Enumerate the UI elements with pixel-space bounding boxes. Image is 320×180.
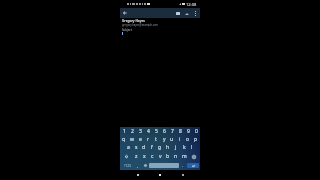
button[interactable]: . [179, 161, 186, 170]
button[interactable]: Enter [187, 163, 199, 168]
staticText: 1 [123, 128, 126, 135]
staticText: z [135, 153, 138, 160]
staticText: Gregory Hayes [122, 19, 145, 23]
staticText: g [158, 144, 162, 151]
staticText: x [143, 153, 146, 160]
button[interactable]: b [164, 152, 172, 161]
staticText: n [174, 153, 178, 160]
button[interactable]: u [168, 135, 176, 143]
button[interactable]: l [188, 143, 196, 152]
button[interactable]: Back [120, 8, 130, 18]
staticText: p [194, 136, 198, 143]
button[interactable]: w [128, 135, 136, 143]
staticText: 4 [147, 128, 150, 135]
button[interactable]: v [156, 152, 164, 161]
button[interactable]: o [184, 135, 192, 143]
button[interactable]: j [172, 143, 180, 152]
staticText: 2 [131, 128, 134, 135]
staticText: o [186, 136, 190, 143]
button[interactable]: 0 [192, 127, 200, 135]
button[interactable]: 1 [120, 127, 128, 135]
staticText: r [147, 136, 150, 143]
button[interactable]: t [152, 135, 160, 143]
button[interactable]: d [140, 143, 148, 152]
staticText: ?123 [124, 164, 131, 168]
button[interactable]: p [192, 135, 200, 143]
staticText: j [175, 144, 177, 151]
staticText: 8 [179, 128, 182, 135]
button[interactable]: Home [155, 170, 165, 180]
staticText: s [135, 144, 138, 151]
button[interactable]: Recents [178, 170, 188, 180]
staticText: 5 [155, 128, 158, 135]
button[interactable]: c [148, 152, 156, 161]
button[interactable]: More options [191, 8, 200, 18]
staticText: , [137, 163, 138, 168]
staticText: gregory.hayes@example.com [122, 23, 158, 27]
staticText: e [139, 136, 142, 143]
button[interactable]: , [134, 161, 141, 170]
button[interactable]: r [144, 135, 152, 143]
button[interactable]: m [180, 152, 188, 161]
button[interactable]: 9 [184, 127, 192, 135]
staticText: k [183, 144, 186, 151]
button[interactable]: q [120, 135, 128, 143]
staticText: 9 [187, 128, 190, 135]
staticText: d [142, 144, 146, 151]
staticText: 6 [163, 128, 166, 135]
staticText: a [127, 144, 130, 151]
staticText: t [155, 136, 157, 143]
button[interactable]: ?123 [120, 161, 134, 170]
button[interactable]: 6 [160, 127, 168, 135]
button[interactable]: Back [133, 170, 143, 180]
staticText: l [191, 144, 193, 151]
button[interactable]: Attach file [173, 8, 182, 18]
button[interactable]: 2 [128, 127, 136, 135]
staticText: u [170, 136, 174, 143]
button[interactable]: Send [182, 8, 191, 18]
staticText: 12:08 [186, 2, 197, 7]
button[interactable]: e [136, 135, 144, 143]
button[interactable]: k [180, 143, 188, 152]
staticText: m [182, 153, 187, 160]
staticText: . [182, 163, 183, 168]
staticText: h [166, 144, 170, 151]
staticText: w [130, 136, 134, 143]
button[interactable]: Shift [120, 152, 132, 161]
staticText: 3 [139, 128, 142, 135]
staticText: b [166, 153, 170, 160]
button[interactable]: h [164, 143, 172, 152]
button[interactable]: g [156, 143, 164, 152]
staticText: c [151, 153, 154, 160]
button[interactable]: 7 [168, 127, 176, 135]
button[interactable]: Space [149, 163, 179, 168]
staticText: Subject [122, 28, 132, 32]
button[interactable]: Backspace [188, 152, 200, 161]
staticText: q [122, 136, 126, 143]
button[interactable]: a [124, 143, 132, 152]
staticText: y [163, 136, 166, 143]
button[interactable]: f [148, 143, 156, 152]
staticText: v [159, 153, 162, 160]
button[interactable]: z [132, 152, 140, 161]
button[interactable]: s [132, 143, 140, 152]
staticText: 0 [195, 128, 198, 135]
button[interactable]: y [160, 135, 168, 143]
button[interactable]: Change keyboard [141, 161, 149, 170]
button[interactable]: x [140, 152, 148, 161]
staticText: i [179, 136, 181, 143]
button[interactable]: 3 [136, 127, 144, 135]
staticText: f [151, 144, 153, 151]
button[interactable]: n [172, 152, 180, 161]
staticText: 7 [171, 128, 174, 135]
button[interactable]: i [176, 135, 184, 143]
button[interactable]: 5 [152, 127, 160, 135]
button[interactable]: 8 [176, 127, 184, 135]
button[interactable]: 4 [144, 127, 152, 135]
